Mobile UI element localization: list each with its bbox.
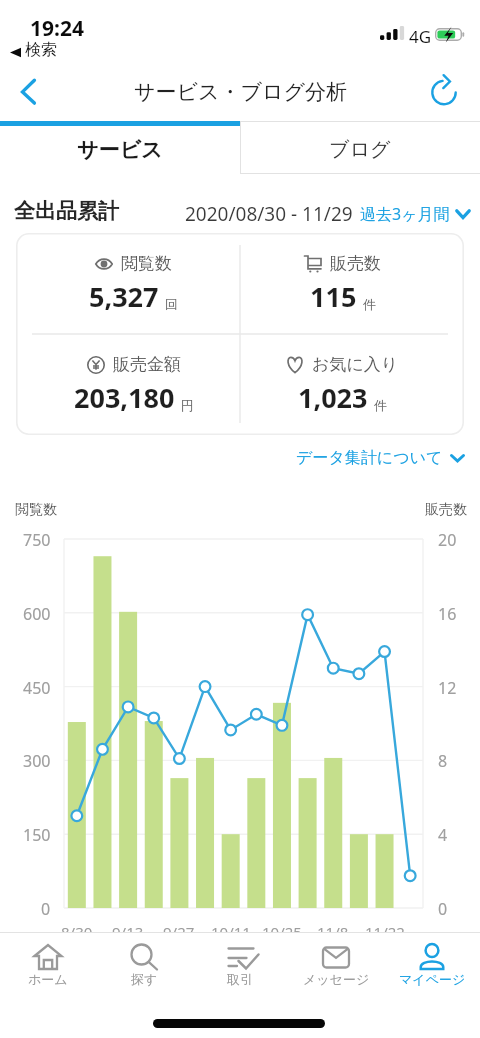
staticText: 10/11 — [211, 922, 251, 942]
staticText: 8/30 — [61, 922, 93, 942]
staticText: 閲覧数 — [15, 501, 57, 519]
staticText: データ集計について — [296, 448, 443, 468]
staticText: メッセージ — [303, 971, 370, 987]
staticText: 19:24 — [30, 14, 84, 43]
staticText: 閲覧数 — [121, 253, 172, 274]
staticText: 0 — [41, 898, 51, 920]
staticText: 300 — [23, 750, 51, 772]
staticText: 1,023 — [298, 379, 368, 416]
staticText: 販売金額 — [113, 354, 181, 375]
button[interactable]: マイページ — [384, 933, 480, 1004]
staticText: 販売数 — [425, 501, 467, 519]
staticText: 5,327 — [89, 278, 159, 315]
staticText: サービス・ブログ分析 — [134, 79, 347, 105]
staticText: 回 — [165, 296, 178, 312]
staticText: 8 — [438, 750, 448, 772]
staticText: サービス — [77, 137, 163, 163]
staticText: 10/25 — [262, 922, 302, 942]
staticText: 11/22 — [365, 922, 405, 942]
staticText: 過去3ヶ月間 — [360, 203, 450, 225]
staticText: 取引 — [227, 971, 253, 987]
staticText: 20 — [438, 529, 457, 551]
button[interactable]: Refresh — [422, 70, 466, 114]
staticText: 600 — [23, 603, 51, 625]
staticText: お気に入り — [312, 354, 399, 375]
staticText: 150 — [23, 824, 51, 846]
staticText: 円 — [181, 397, 194, 413]
staticText: 11/8 — [317, 922, 349, 942]
button[interactable]: ホーム — [0, 933, 96, 1004]
button[interactable]: データ集計について — [296, 448, 465, 468]
staticText: 件 — [374, 397, 387, 413]
button[interactable]: ブログ — [240, 121, 480, 174]
button[interactable]: メッセージ — [288, 933, 384, 1004]
button[interactable]: 過去3ヶ月間 — [360, 203, 471, 225]
staticText: 全出品累計 — [14, 198, 119, 224]
staticText: ブログ — [329, 137, 391, 162]
button[interactable]: Back — [6, 70, 50, 114]
button[interactable]: 探す — [96, 933, 192, 1004]
button[interactable]: サービス — [0, 121, 240, 174]
staticText: 検索 — [25, 40, 57, 60]
staticText: 115 — [310, 278, 357, 315]
staticText: ホーム — [28, 971, 68, 987]
staticText: 4 — [438, 824, 448, 846]
staticText: 9/13 — [112, 922, 144, 942]
staticText: 203,180 — [74, 379, 175, 416]
staticText: 12 — [438, 677, 457, 699]
staticText: 2020/08/30 - 11/29 — [185, 201, 353, 227]
staticText: マイページ — [399, 971, 466, 987]
staticText: 4G — [409, 25, 432, 48]
staticText: 750 — [23, 529, 51, 551]
staticText: 探す — [131, 971, 158, 987]
staticText: 9/27 — [163, 922, 195, 942]
staticText: 16 — [438, 603, 457, 625]
staticText: 0 — [438, 898, 448, 920]
staticText: 450 — [23, 677, 51, 699]
staticText: 販売数 — [330, 253, 381, 274]
button[interactable]: 取引 — [192, 933, 288, 1004]
staticText: 件 — [363, 296, 376, 312]
